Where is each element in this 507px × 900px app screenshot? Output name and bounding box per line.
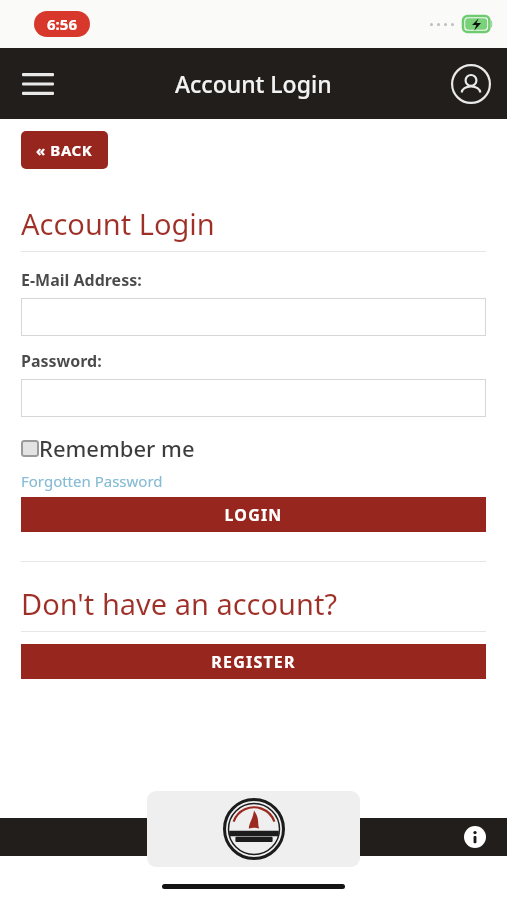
button[interactable]: Open navigation menu [14, 60, 62, 108]
button[interactable] [21, 298, 486, 336]
button[interactable]: REGISTER [21, 644, 486, 679]
staticText: Forgotten Password [21, 471, 163, 491]
staticText: Password: [21, 350, 102, 372]
staticText: Account Login [21, 204, 215, 243]
button[interactable]: Remember me [21, 433, 195, 463]
staticText: « BACK [36, 140, 93, 160]
button[interactable]: Forgotten Password [21, 471, 163, 491]
button[interactable] [21, 379, 486, 417]
button[interactable] [147, 791, 360, 867]
staticText: E-Mail Address: [21, 269, 142, 291]
staticText: LOGIN [224, 504, 283, 526]
button[interactable]: Account [447, 60, 495, 108]
staticText: REGISTER [211, 651, 296, 673]
staticText: 6:56 [47, 14, 77, 34]
staticText: Remember me [39, 433, 195, 463]
button[interactable]: « BACK [21, 131, 108, 169]
button[interactable]: LOGIN [21, 497, 486, 532]
staticText: Account Login [175, 68, 332, 99]
staticText: Don't have an account? [21, 584, 337, 623]
button[interactable]: Information [457, 819, 493, 855]
